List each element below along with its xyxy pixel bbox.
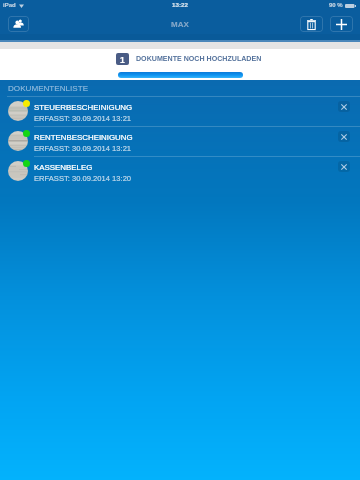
- staticText: ERFASST: 30.09.2014 13:21: [34, 144, 132, 152]
- staticText: KASSENBELEG: [34, 163, 93, 172]
- button[interactable]: KASSENBELEG: [0, 157, 360, 186]
- staticText: RENTENBESCHEINIGUNG: [34, 133, 133, 142]
- button[interactable]: Entfernen: [338, 131, 350, 142]
- staticText: 1: [120, 55, 125, 64]
- staticText: 90 %: [329, 2, 343, 9]
- staticText: DOKUMENTE NOCH HOCHZULADEN: [136, 55, 262, 63]
- button[interactable]: Kontakte: [8, 16, 29, 32]
- staticText: DOKUMENTENLISTE: [8, 84, 89, 93]
- staticText: STEUERBESCHEINIGUNG: [34, 103, 133, 112]
- button[interactable]: Entfernen: [338, 101, 350, 112]
- staticText: ERFASST: 30.09.2014 13:20: [34, 174, 132, 182]
- button[interactable]: STEUERBESCHEINIGUNG: [0, 97, 360, 126]
- staticText: MAX: [171, 20, 189, 29]
- button[interactable]: Löschen: [300, 16, 323, 32]
- staticText: iPad: [3, 2, 16, 9]
- button[interactable]: RENTENBESCHEINIGUNG: [0, 127, 360, 156]
- button[interactable]: Hinzufügen: [330, 16, 353, 32]
- staticText: 13:22: [172, 1, 188, 8]
- button[interactable]: Entfernen: [338, 161, 350, 172]
- staticText: ERFASST: 30.09.2014 13:21: [34, 114, 132, 122]
